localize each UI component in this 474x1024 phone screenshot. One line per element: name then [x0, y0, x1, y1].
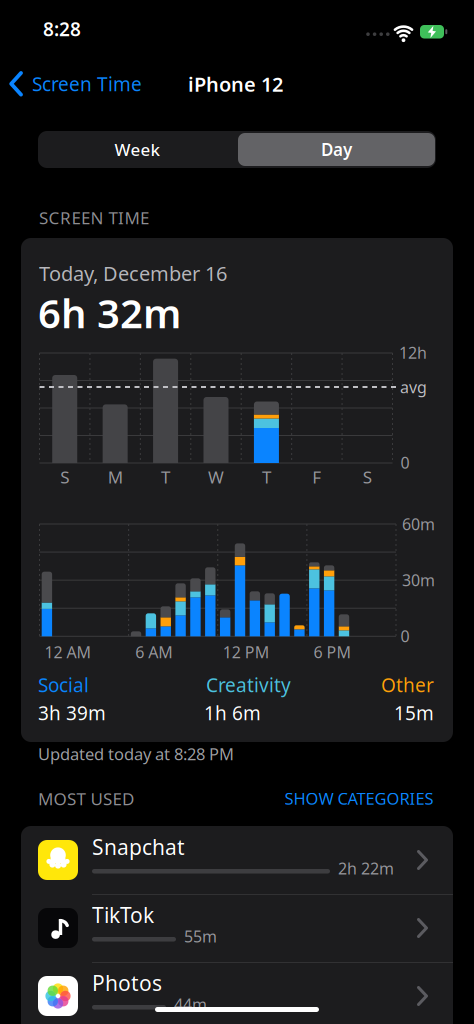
- staticText: 3h 39m: [38, 700, 106, 726]
- staticText: iPhone 12: [188, 70, 283, 98]
- staticText: SHOW CATEGORIES: [284, 787, 433, 809]
- staticText: 6 AM: [135, 641, 173, 663]
- staticText: 12 PM: [223, 641, 270, 663]
- staticText: 12h: [399, 342, 427, 363]
- staticText: Photos: [92, 968, 162, 997]
- staticText: 6h 32m: [38, 285, 181, 340]
- staticText: F: [312, 465, 321, 489]
- staticText: 2h 22m: [338, 857, 394, 879]
- staticText: Snapchat: [92, 832, 185, 861]
- staticText: Other: [381, 672, 434, 698]
- staticText: Week: [114, 138, 160, 161]
- staticText: avg: [400, 376, 427, 398]
- staticText: 1h 6m: [204, 700, 261, 726]
- button[interactable]: Photos: [21, 962, 453, 1024]
- staticText: Social: [38, 672, 89, 698]
- button[interactable]: Snapchat: [21, 826, 453, 894]
- staticText: 8:28: [43, 16, 81, 42]
- staticText: T: [262, 465, 271, 489]
- staticText: 55m: [184, 925, 217, 947]
- staticText: MOST USED: [38, 787, 134, 810]
- staticText: T: [161, 465, 170, 489]
- button[interactable]: Week: [38, 131, 237, 168]
- staticText: 30m: [402, 569, 435, 591]
- staticText: 60m: [402, 513, 435, 535]
- staticText: Day: [321, 138, 352, 161]
- staticText: Updated today at 8:28 PM: [38, 742, 234, 765]
- staticText: Creativity: [206, 672, 291, 698]
- button[interactable]: Screen Time: [9, 71, 142, 97]
- staticText: Today, December 16: [39, 259, 227, 287]
- button[interactable]: Day: [238, 133, 435, 166]
- staticText: S: [60, 465, 69, 489]
- staticText: TikTok: [92, 900, 154, 929]
- staticText: 0: [400, 452, 409, 473]
- staticText: M: [108, 465, 123, 489]
- staticText: Screen Time: [32, 71, 142, 97]
- staticText: 15m: [394, 700, 434, 726]
- button[interactable]: TikTok: [21, 894, 453, 962]
- staticText: SCREEN TIME: [39, 206, 149, 229]
- staticText: S: [363, 465, 372, 489]
- staticText: W: [208, 465, 224, 489]
- button[interactable]: SHOW CATEGORIES: [284, 787, 433, 809]
- staticText: 0: [400, 625, 409, 647]
- staticText: 6 PM: [313, 641, 351, 663]
- staticText: 44m: [174, 993, 207, 1015]
- staticText: 12 AM: [44, 641, 91, 663]
